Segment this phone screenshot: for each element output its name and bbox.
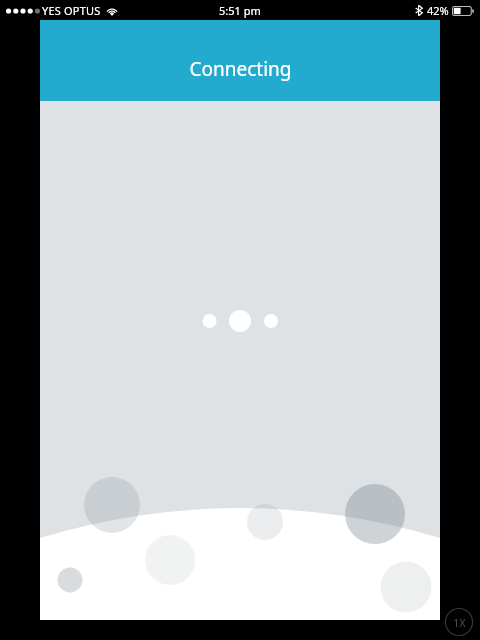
other: Loading: [200, 305, 280, 337]
staticText: 42%: [427, 3, 449, 18]
button[interactable]: Connecting: [40, 20, 440, 101]
button[interactable]: Scale 1X: [445, 608, 473, 636]
staticText: YES OPTUS: [42, 3, 101, 18]
staticText: Connecting: [189, 56, 292, 82]
staticText: 5:51 pm: [219, 3, 261, 18]
staticText: 1X: [453, 615, 466, 630]
